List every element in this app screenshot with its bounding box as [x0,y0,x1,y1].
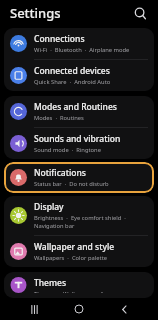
staticText: Connections [34,33,85,45]
staticText: Display [34,201,64,213]
staticText: Status bar · Do not disturb [34,180,109,188]
staticText: Wallpapers · Color palette [34,254,108,262]
button[interactable]: Themes [4,272,154,298]
staticText: Connected devices [34,65,110,77]
staticText: Settings [10,4,61,22]
button[interactable]: Modes and Routines [4,96,154,127]
staticText: Brightness · Eye comfort shield · Naviga… [34,214,146,230]
staticText: Themes · Wallpapers · Icons [34,290,116,293]
button[interactable]: Search [130,3,150,23]
button[interactable]: Home [68,298,90,320]
staticText: Wallpaper and style [34,241,115,253]
button[interactable]: Wallpaper and style [4,236,154,267]
staticText: Sound mode · Ringtone [34,146,101,154]
staticText: Modes and Routines [34,101,117,113]
staticText: Sounds and vibration [34,133,121,145]
button[interactable]: Notifications [4,162,154,193]
staticText: Themes [34,277,67,289]
staticText: Modes · Routines [34,114,84,122]
button[interactable]: Recent apps [23,298,45,320]
button[interactable]: Connected devices [4,60,154,91]
button[interactable]: Display [4,196,154,235]
button[interactable]: Notifications [4,162,154,193]
button[interactable]: Connections [4,28,154,59]
button[interactable]: Sounds and vibration [4,128,154,159]
staticText: Wi-Fi · Bluetooth · Airplane mode [34,46,130,54]
button[interactable]: Back [113,298,135,320]
staticText: Notifications [34,167,86,179]
staticText: Quick Share · Android Auto [34,78,111,86]
